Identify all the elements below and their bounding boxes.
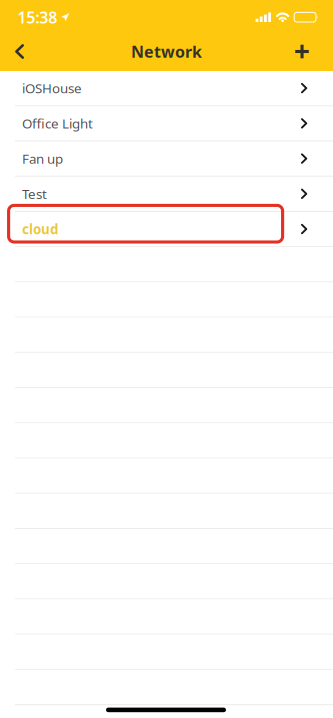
staticText: cloud <box>22 220 58 238</box>
button[interactable]: Fan up <box>0 141 333 177</box>
button[interactable]: cloud <box>0 212 333 247</box>
staticText: Network <box>131 41 202 62</box>
staticText: Office Light <box>22 114 93 132</box>
button[interactable]: Test <box>0 177 333 212</box>
staticText: Fan up <box>22 150 63 167</box>
button[interactable]: iOSHouse <box>0 71 333 106</box>
staticText: Test <box>22 185 47 203</box>
button[interactable]: Back <box>0 32 41 71</box>
staticText: 15:38 <box>17 7 57 28</box>
button[interactable]: Office Light <box>0 106 333 141</box>
button[interactable]: Add <box>278 32 333 71</box>
staticText: iOSHouse <box>22 79 82 97</box>
